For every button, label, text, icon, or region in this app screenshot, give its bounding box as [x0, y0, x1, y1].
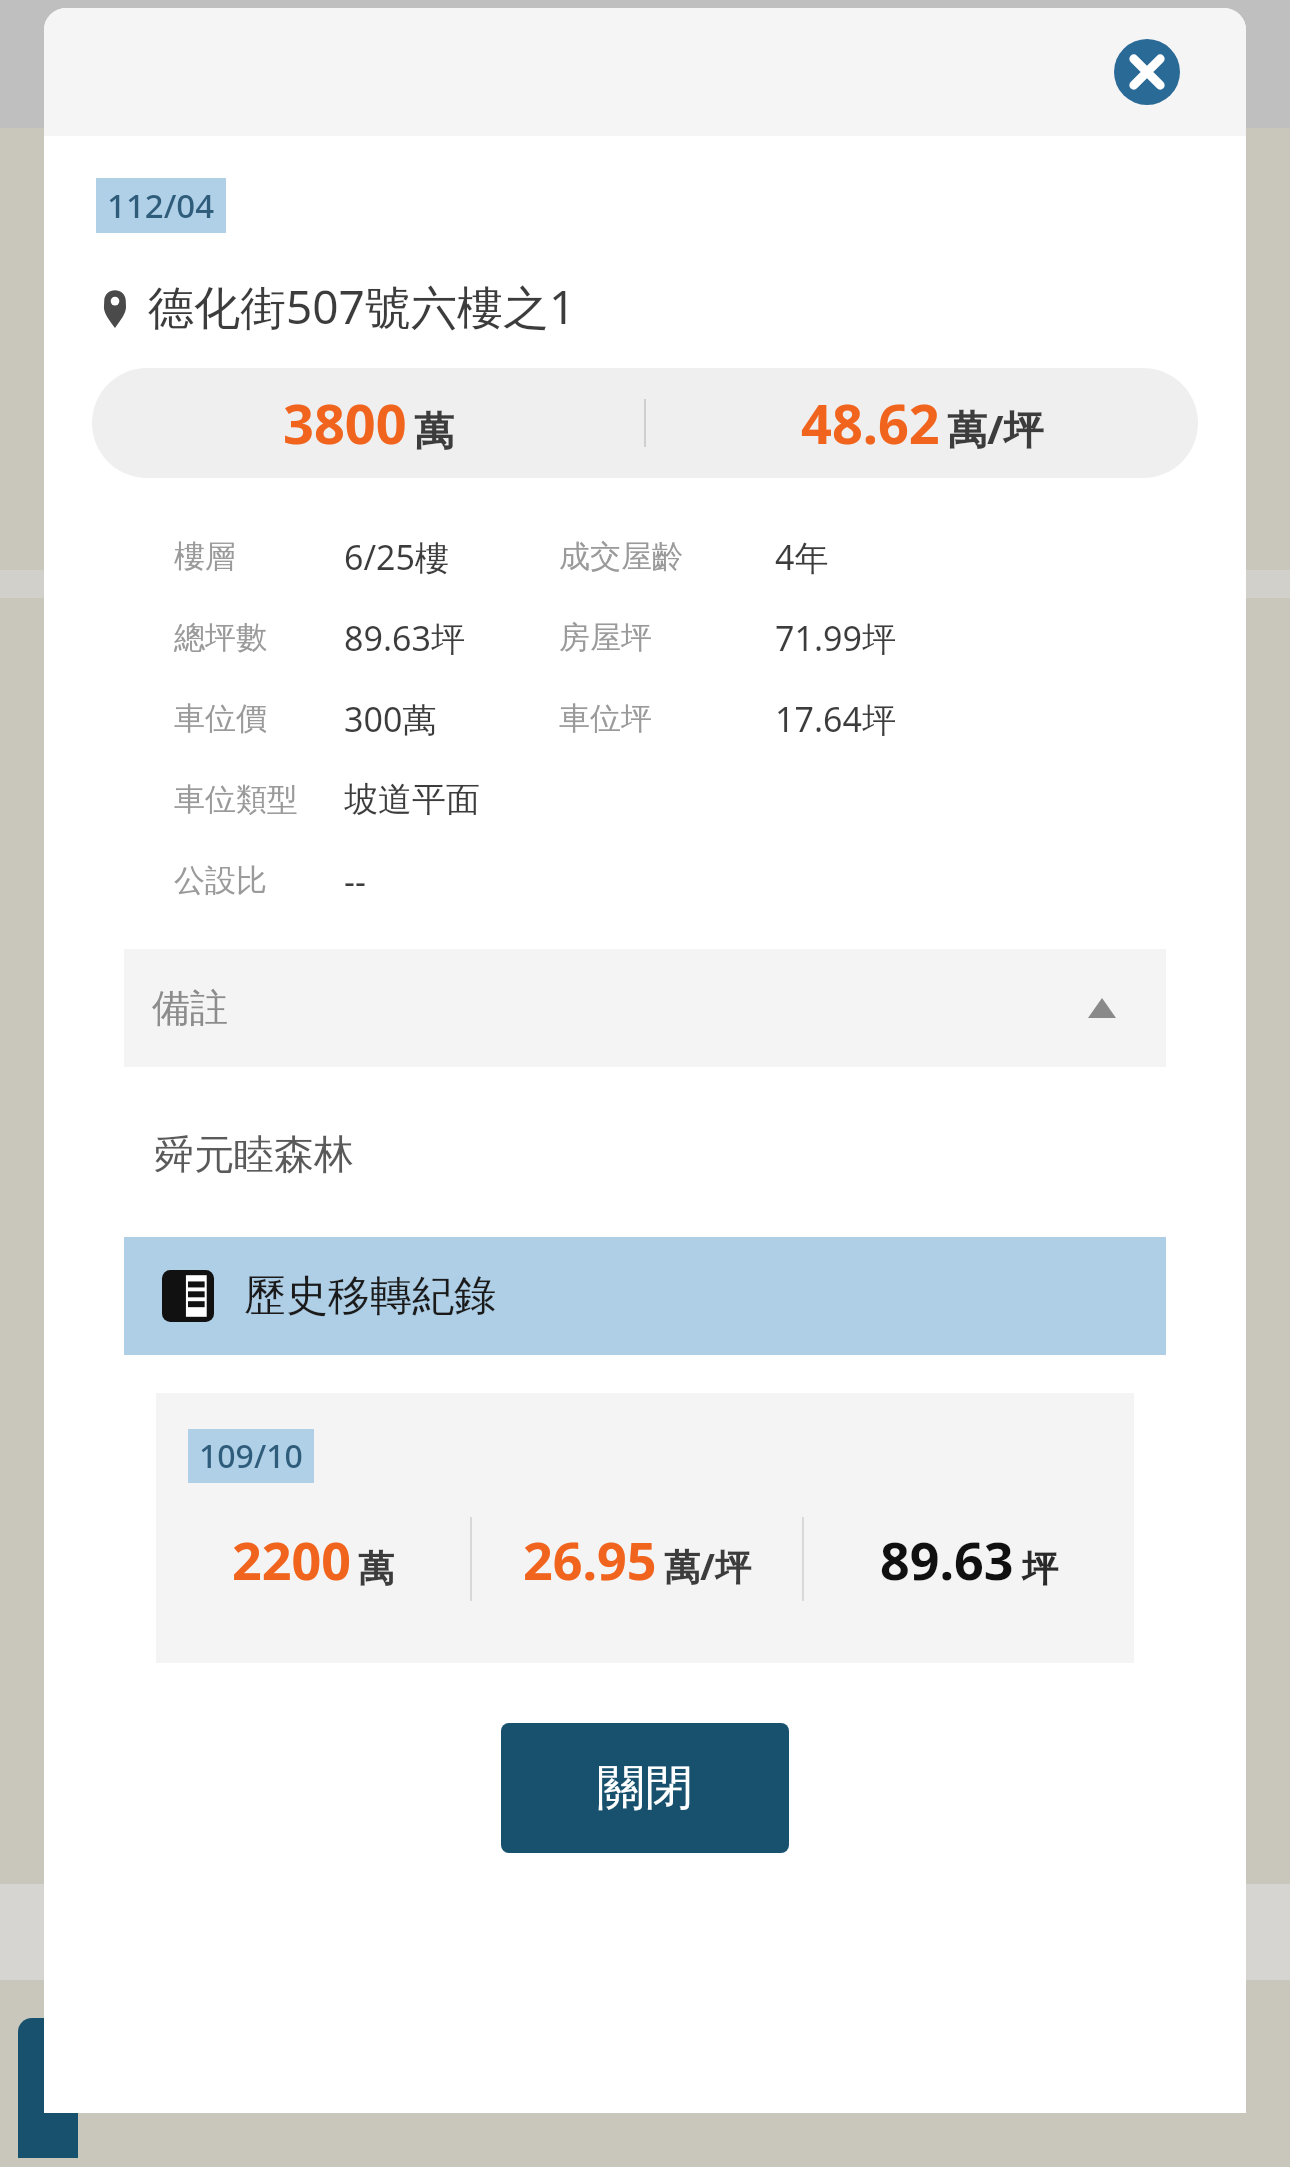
staticText: 坪 [1022, 1546, 1058, 1591]
staticText: 關閉 [597, 1758, 693, 1818]
staticText: 89.63 [880, 1524, 1014, 1595]
staticText: 德化街507號六樓之1 [148, 275, 576, 338]
staticText: 公設比 [174, 861, 267, 900]
staticText: 萬/坪 [664, 1542, 751, 1591]
button[interactable]: 備註 [124, 949, 1166, 1067]
button[interactable]: 109/10 [156, 1393, 1134, 1663]
staticText: 89.63坪 [344, 615, 465, 661]
staticText: 樓層 [174, 537, 236, 576]
staticText: 舜元睦森林 [154, 1129, 354, 1179]
staticText: 萬 [414, 406, 454, 456]
staticText: 26.95 [523, 1524, 657, 1595]
staticText: 車位類型 [174, 780, 298, 819]
staticText: -- [344, 858, 366, 904]
staticText: 300萬 [344, 696, 437, 742]
staticText: 坡道平面 [344, 778, 480, 821]
staticText: 109/10 [199, 1434, 303, 1478]
staticText: 萬/坪 [947, 401, 1044, 456]
button[interactable]: 關閉 [501, 1723, 789, 1853]
button[interactable]: 歷史移轉紀錄 [124, 1237, 1166, 1355]
staticText: 3800 [283, 386, 407, 460]
staticText: 71.99坪 [775, 615, 896, 661]
button[interactable]: Close [1108, 33, 1186, 111]
staticText: 48.62 [801, 386, 940, 460]
staticText: 4年 [775, 534, 829, 580]
staticText: 成交屋齡 [559, 537, 683, 576]
staticText: 總坪數 [174, 618, 267, 657]
staticText: 房屋坪 [559, 618, 652, 657]
staticText: 萬 [358, 1546, 394, 1591]
staticText: 17.64坪 [775, 696, 896, 742]
staticText: 備註 [152, 984, 228, 1032]
staticText: 車位價 [174, 699, 267, 738]
staticText: 2200 [232, 1524, 351, 1595]
staticText: 6/25樓 [344, 534, 449, 580]
staticText: 車位坪 [559, 699, 652, 738]
staticText: 112/04 [107, 183, 215, 228]
staticText: 歷史移轉紀錄 [244, 1270, 496, 1323]
